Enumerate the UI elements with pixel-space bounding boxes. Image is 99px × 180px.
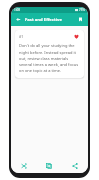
staticText: 75%: [79, 8, 85, 12]
button[interactable]: Shuffle: [11, 159, 36, 173]
button[interactable]: Copy: [36, 159, 62, 173]
staticText: Don't do all your studying the night bef…: [19, 43, 80, 73]
staticText: #1: [19, 34, 24, 39]
staticText: Fast and Effective Study Tips: [25, 17, 74, 23]
button[interactable]: Share: [62, 159, 88, 173]
staticText: 1:08: [14, 8, 20, 12]
button[interactable]: #1: [15, 30, 84, 78]
button[interactable]: Favorite: [73, 33, 80, 40]
button[interactable]: Back: [14, 15, 23, 24]
button[interactable]: Saved tips: [76, 15, 85, 24]
